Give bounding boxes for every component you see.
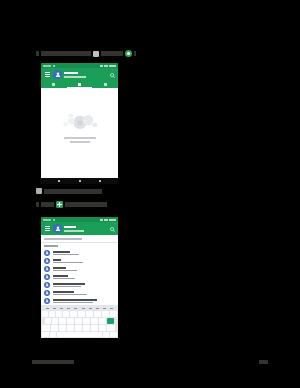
button[interactable] [41, 281, 118, 289]
button[interactable]: Open navigation menu [44, 72, 50, 78]
button[interactable]: Send [107, 318, 114, 324]
button[interactable] [41, 257, 118, 265]
button[interactable]: Account avatar [53, 70, 62, 79]
button[interactable]: Account avatar [53, 224, 62, 233]
button[interactable]: Messages [41, 81, 66, 88]
button[interactable]: Calls [66, 81, 92, 88]
button[interactable]: Open navigation menu [44, 226, 50, 232]
button[interactable]: Back [56, 178, 62, 184]
button[interactable] [41, 235, 118, 242]
button[interactable]: Recents [97, 178, 103, 184]
button[interactable] [41, 273, 118, 281]
button[interactable]: Search [109, 72, 115, 78]
button[interactable] [41, 289, 118, 297]
button[interactable] [41, 265, 118, 273]
button[interactable] [41, 297, 118, 305]
button[interactable]: Voicemail [92, 81, 118, 88]
button[interactable]: Home [77, 178, 83, 184]
button[interactable] [41, 249, 118, 257]
button[interactable]: Search [109, 226, 115, 232]
